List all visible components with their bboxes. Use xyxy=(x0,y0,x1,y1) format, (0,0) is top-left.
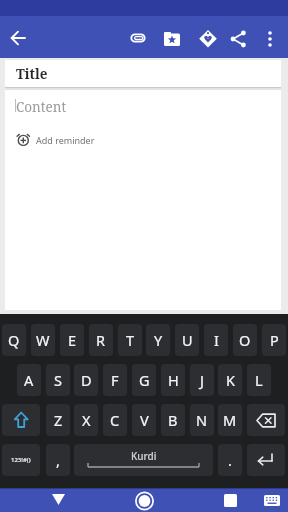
staticText: S xyxy=(54,370,62,390)
staticText: D xyxy=(81,370,92,390)
button[interactable]: Kurdi xyxy=(74,444,213,476)
button[interactable]: U xyxy=(175,324,199,356)
button[interactable]: X xyxy=(74,404,98,436)
staticText: K xyxy=(226,370,235,390)
staticText: N xyxy=(196,410,208,430)
button[interactable]: W xyxy=(31,324,55,356)
staticText: X xyxy=(82,410,91,430)
button[interactable]: F xyxy=(103,364,127,396)
button[interactable]: H xyxy=(161,364,185,396)
staticText: B xyxy=(168,410,178,430)
staticText: Y xyxy=(154,330,163,350)
button[interactable]: C xyxy=(103,404,127,436)
staticText: 123!#() xyxy=(11,456,31,464)
staticText: J xyxy=(200,370,204,390)
staticText: P xyxy=(270,330,279,350)
button[interactable]: M xyxy=(218,404,242,436)
staticText: V xyxy=(140,410,149,430)
button[interactable]: S xyxy=(46,364,70,396)
button[interactable]: J xyxy=(190,364,214,396)
staticText: W xyxy=(36,330,50,350)
button[interactable] xyxy=(2,22,34,54)
staticText: H xyxy=(168,370,179,390)
button[interactable]: L xyxy=(247,364,271,396)
button[interactable]: Content xyxy=(5,90,281,310)
button[interactable] xyxy=(254,23,286,55)
button[interactable]: Y xyxy=(146,324,170,356)
button[interactable]: B xyxy=(161,404,185,436)
button[interactable]: T xyxy=(118,324,142,356)
button[interactable] xyxy=(127,487,162,512)
button[interactable] xyxy=(42,487,76,512)
button[interactable]: 123!#() xyxy=(2,444,40,476)
button[interactable]: Add reminder xyxy=(10,128,140,152)
button[interactable]: R xyxy=(89,324,113,356)
staticText: Title xyxy=(16,65,48,83)
button[interactable]: D xyxy=(74,364,98,396)
button[interactable]: E xyxy=(60,324,84,356)
button[interactable] xyxy=(247,404,285,436)
button[interactable] xyxy=(222,23,254,55)
button[interactable] xyxy=(250,487,286,512)
staticText: Content xyxy=(16,98,67,116)
staticText: Q xyxy=(8,330,20,350)
button[interactable] xyxy=(192,23,224,55)
button[interactable]: P xyxy=(262,324,286,356)
staticText: . xyxy=(228,450,232,470)
button[interactable] xyxy=(213,487,248,512)
staticText: C xyxy=(110,410,120,430)
button[interactable] xyxy=(2,404,40,436)
button[interactable]: Z xyxy=(46,404,70,436)
button[interactable] xyxy=(122,22,154,54)
button[interactable]: , xyxy=(46,444,70,476)
staticText: G xyxy=(139,370,150,390)
staticText: , xyxy=(56,450,60,470)
staticText: L xyxy=(255,370,263,390)
staticText: U xyxy=(182,330,193,350)
button[interactable]: O xyxy=(233,324,257,356)
button[interactable]: G xyxy=(132,364,156,396)
button[interactable] xyxy=(247,444,285,476)
staticText: R xyxy=(96,330,106,350)
button[interactable]: A xyxy=(17,364,41,396)
staticText: E xyxy=(68,330,77,350)
button[interactable]: V xyxy=(132,404,156,436)
button[interactable]: I xyxy=(204,324,228,356)
button[interactable] xyxy=(156,23,188,55)
staticText: T xyxy=(126,330,135,350)
staticText: Kurdi xyxy=(131,449,157,463)
button[interactable]: K xyxy=(218,364,242,396)
staticText: A xyxy=(24,370,34,390)
staticText: I xyxy=(214,330,219,350)
staticText: O xyxy=(239,330,251,350)
staticText: Z xyxy=(54,410,63,430)
button[interactable]: Title xyxy=(5,60,281,87)
staticText: M xyxy=(223,410,237,430)
button[interactable]: N xyxy=(190,404,214,436)
staticText: Add reminder xyxy=(36,134,95,146)
staticText: F xyxy=(111,370,119,390)
button[interactable]: . xyxy=(218,444,242,476)
button[interactable]: Q xyxy=(2,324,26,356)
